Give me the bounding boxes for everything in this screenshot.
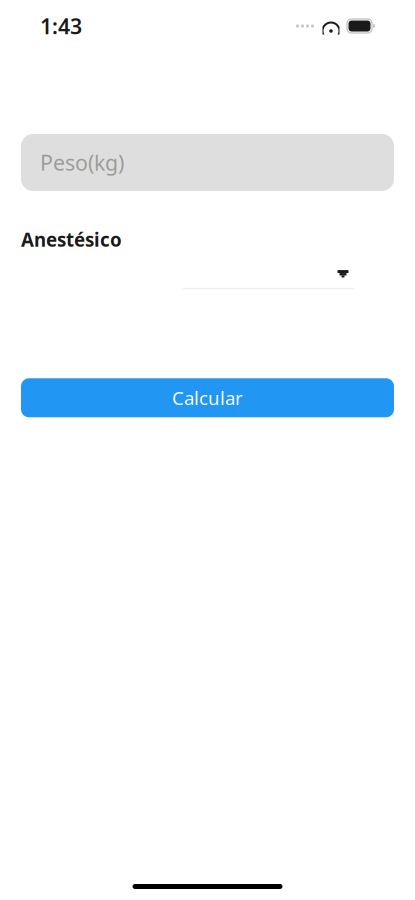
staticText: Anestésico: [21, 227, 122, 252]
staticText: Peso(kg): [40, 148, 124, 177]
button[interactable]: Calcular: [21, 378, 394, 417]
button[interactable]: Anestésico: [182, 260, 354, 289]
staticText: 1:43: [40, 12, 82, 40]
staticText: Calcular: [172, 385, 243, 410]
